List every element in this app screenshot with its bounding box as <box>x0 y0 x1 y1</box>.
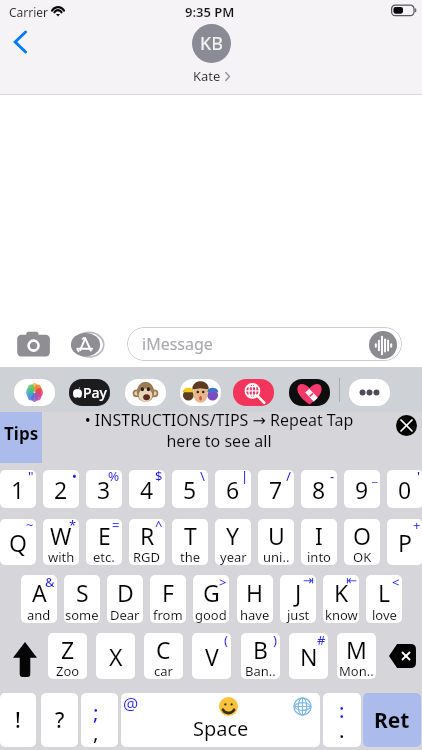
button[interactable]: Memoji <box>125 379 166 406</box>
button[interactable]: F <box>150 575 186 623</box>
staticText: * <box>69 519 77 534</box>
staticText: _ <box>372 470 378 485</box>
button[interactable]: Back <box>4 24 40 60</box>
staticText: X <box>109 641 123 672</box>
button[interactable]: # <box>289 633 328 679</box>
button[interactable]: " <box>0 470 36 508</box>
staticText: | <box>241 470 249 485</box>
staticText: KB <box>200 31 223 56</box>
staticText: < <box>392 575 400 591</box>
staticText: N <box>300 641 318 672</box>
button[interactable]: Health <box>289 379 330 406</box>
staticText: Dear <box>110 606 140 623</box>
button[interactable]: U <box>258 519 294 565</box>
button[interactable]: ) <box>241 633 280 679</box>
button[interactable]: Images <box>233 379 274 406</box>
staticText: 9:35 PM <box>185 3 235 21</box>
button[interactable]: Photos <box>14 379 55 406</box>
button[interactable]: Shift <box>0 633 47 679</box>
staticText: Kate <box>193 67 221 85</box>
button[interactable]: ! <box>0 693 36 747</box>
button[interactable]: / <box>258 470 294 508</box>
staticText: $ <box>155 470 163 485</box>
button[interactable]: ? <box>41 693 78 747</box>
button[interactable]: > <box>193 575 229 623</box>
staticText: and <box>27 606 51 623</box>
button[interactable]: Apple Pay <box>69 379 110 406</box>
button[interactable]: Close <box>396 415 417 436</box>
staticText: S <box>76 577 89 608</box>
button[interactable]: Camera <box>16 336 52 364</box>
staticText: ) <box>273 633 278 649</box>
button[interactable]: Backspace <box>385 633 419 679</box>
staticText: ⇤ <box>346 575 357 588</box>
staticText: Zoo <box>56 662 80 679</box>
staticText: - <box>330 470 335 485</box>
staticText: \ <box>200 470 206 485</box>
button[interactable]: @ <box>121 693 320 747</box>
button[interactable]: Audio message <box>369 331 397 359</box>
button[interactable]: C <box>144 633 183 679</box>
button[interactable]: T <box>172 519 208 565</box>
staticText: F <box>162 577 174 608</box>
button[interactable]: = <box>86 519 122 565</box>
button[interactable]: D <box>107 575 143 623</box>
button[interactable]: _ <box>344 470 380 508</box>
staticText: W <box>50 520 72 551</box>
button[interactable]: Z <box>48 633 87 679</box>
button[interactable]: ⇥ <box>280 575 316 623</box>
staticText: + <box>413 519 421 534</box>
button[interactable]: ~ <box>0 519 36 565</box>
button[interactable]: M <box>337 633 376 679</box>
staticText: 0 <box>398 474 412 505</box>
button[interactable]: * <box>43 519 79 565</box>
staticText: Ban.. <box>245 662 276 679</box>
button[interactable]: ( <box>192 633 231 679</box>
button[interactable]: % <box>86 470 122 508</box>
button[interactable]: ; <box>81 693 118 747</box>
staticText: know <box>325 606 358 623</box>
staticText: E <box>98 520 111 551</box>
button[interactable]: ⇤ <box>323 575 359 623</box>
button[interactable]: Y <box>215 519 251 565</box>
staticText: M <box>346 634 367 665</box>
button[interactable]: App Store <box>70 334 104 364</box>
button[interactable]: - <box>301 470 337 508</box>
staticText: 9 <box>355 474 369 505</box>
staticText: have <box>240 606 270 623</box>
button[interactable]: I <box>301 519 337 565</box>
staticText: good <box>195 606 227 623</box>
staticText: some <box>65 606 99 623</box>
button[interactable]: iMessage <box>127 327 402 361</box>
button[interactable]: : <box>323 693 361 747</box>
button[interactable]: + <box>387 519 422 565</box>
button[interactable]: \ <box>172 470 208 508</box>
button[interactable]: KB <box>192 24 231 85</box>
button[interactable]: Tips <box>0 412 42 463</box>
button[interactable]: | <box>215 470 251 508</box>
staticText: OK <box>353 548 372 565</box>
staticText: Carrier <box>9 4 49 20</box>
button[interactable]: O <box>344 519 380 565</box>
staticText: C <box>156 634 171 665</box>
button[interactable]: S <box>64 575 100 623</box>
staticText: % <box>108 470 120 485</box>
staticText: ! <box>15 706 21 735</box>
staticText: I <box>315 520 323 551</box>
staticText: ( <box>224 633 229 649</box>
button[interactable]: • <box>43 470 79 508</box>
staticText: 7 <box>269 474 283 505</box>
button[interactable]: ^ <box>129 519 165 565</box>
button[interactable]: $ <box>129 470 165 508</box>
staticText: & <box>45 575 55 591</box>
button[interactable]: More <box>349 379 390 406</box>
button[interactable]: & <box>21 575 57 623</box>
button[interactable]: H <box>237 575 273 623</box>
staticText: O <box>353 520 371 551</box>
button[interactable]: < <box>366 575 402 623</box>
button[interactable]: ' <box>387 470 422 508</box>
button[interactable]: X <box>96 633 135 679</box>
button[interactable]: Ret <box>363 693 421 747</box>
button[interactable]: Memoji sticker <box>180 379 221 406</box>
staticText: 6 <box>226 474 240 505</box>
